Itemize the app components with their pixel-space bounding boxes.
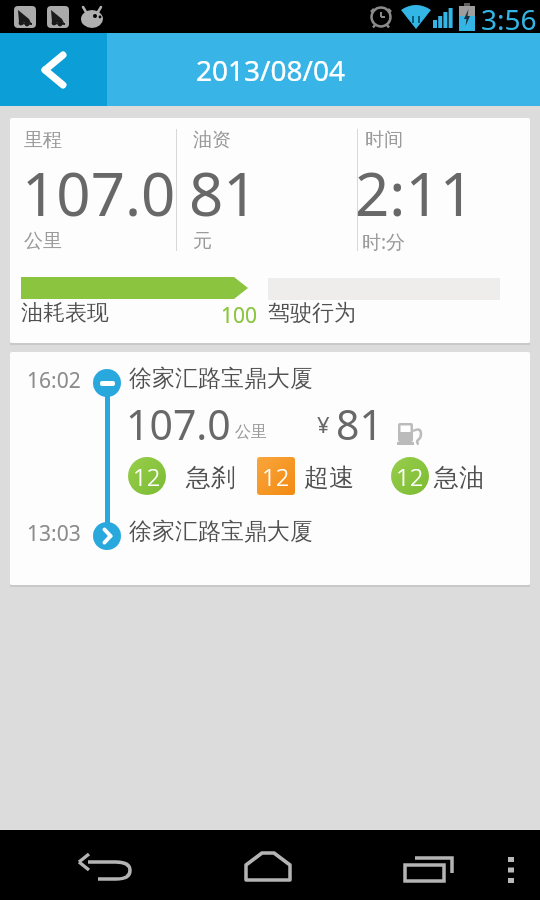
staticText: 油耗表现 [21, 299, 109, 327]
button[interactable]: 12 [128, 457, 166, 495]
staticText: 13:03 [27, 519, 81, 548]
staticText: 公里 [235, 422, 267, 442]
button[interactable] [76, 852, 136, 884]
staticText: 2:11 [355, 152, 475, 234]
staticText: 时间 [365, 128, 403, 152]
staticText: 16:02 [27, 366, 81, 395]
button[interactable]: 驾驶行为 [268, 299, 500, 327]
staticText: 油资 [193, 128, 231, 152]
staticText: 107.0 [22, 152, 176, 234]
button[interactable]: 2:11 [355, 152, 475, 234]
staticText: 里程 [24, 128, 62, 152]
staticText: 驾驶行为 [268, 299, 356, 327]
button[interactable]: 107.0 [22, 152, 176, 234]
button[interactable] [403, 854, 455, 882]
button[interactable]: 81 [189, 152, 258, 234]
button[interactable] [244, 850, 292, 882]
button[interactable]: 16:02 [10, 352, 530, 585]
staticText: 元 [193, 229, 212, 253]
staticText: 急油 [434, 462, 484, 493]
button[interactable]: 油耗表现 [21, 299, 258, 330]
staticText: 徐家汇路宝鼎大厦 [129, 517, 313, 546]
staticText: 超速 [304, 462, 354, 493]
staticText: 100 [221, 301, 258, 330]
button[interactable]: 12 [391, 457, 429, 495]
button[interactable] [0, 33, 107, 106]
staticText: 81 [336, 396, 383, 452]
button[interactable]: ¥ [317, 396, 423, 452]
staticText: 12 [262, 460, 290, 493]
staticText: 12 [396, 460, 424, 493]
staticText: 徐家汇路宝鼎大厦 [129, 364, 313, 393]
staticText: ¥ [317, 409, 330, 439]
staticText: 12 [133, 460, 161, 493]
staticText: 急刹 [186, 462, 236, 493]
button[interactable]: 12 [257, 457, 295, 495]
staticText: 时:分 [362, 229, 406, 255]
button[interactable]: 107.0 [126, 396, 267, 452]
staticText: 81 [189, 152, 258, 234]
staticText: 2013/08/04 [196, 51, 345, 89]
staticText: 公里 [24, 229, 62, 253]
button[interactable] [502, 856, 520, 886]
staticText: 107.0 [126, 396, 231, 452]
staticText: 3:56 [481, 0, 537, 33]
